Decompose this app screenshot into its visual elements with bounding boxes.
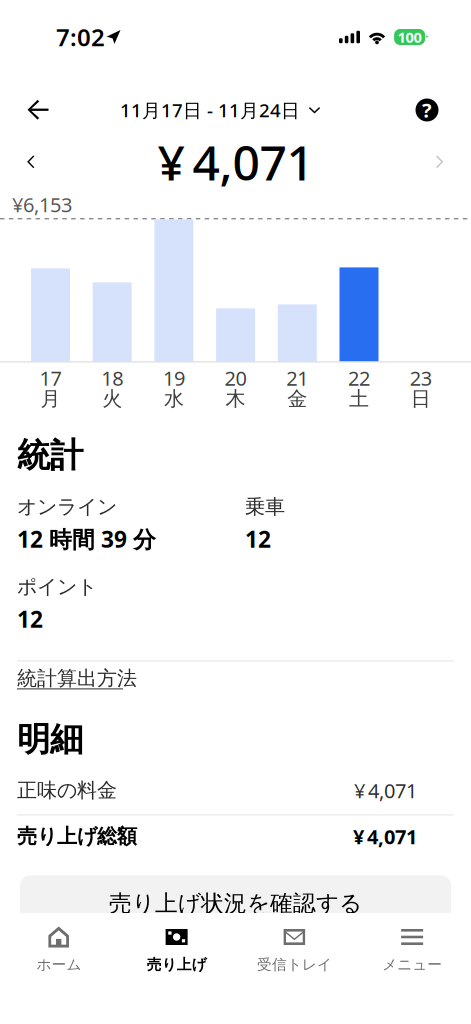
staticText: 月 bbox=[40, 387, 60, 411]
staticText: 17 bbox=[39, 365, 61, 391]
staticText: 20 bbox=[225, 365, 247, 391]
staticText: 火 bbox=[102, 387, 122, 411]
staticText: 21 bbox=[286, 365, 308, 391]
staticText: 受信トレイ bbox=[257, 955, 332, 973]
staticText: オンライン bbox=[17, 495, 117, 519]
staticText: 土 bbox=[349, 387, 369, 411]
staticText: 乗車 bbox=[245, 495, 285, 519]
staticText: 12 bbox=[245, 524, 271, 554]
button[interactable]: 受信トレイ bbox=[235, 926, 353, 972]
staticText: 12 bbox=[17, 604, 43, 634]
staticText: 売り上げ bbox=[147, 955, 207, 973]
staticText: 明細 bbox=[17, 719, 83, 760]
staticText: メニュー bbox=[382, 955, 442, 973]
button[interactable]: Next week bbox=[418, 133, 462, 191]
staticText: 18 bbox=[101, 365, 123, 391]
staticText: 100 bbox=[398, 27, 422, 47]
staticText: ホーム bbox=[36, 955, 81, 973]
staticText: 日 bbox=[411, 387, 431, 411]
staticText: 12 時間 39 分 bbox=[17, 524, 156, 554]
button[interactable]: 11月17日 - 11月24日 bbox=[120, 88, 320, 132]
staticText: ¥ 4,071 bbox=[354, 777, 417, 804]
button[interactable]: Previous week bbox=[9, 133, 53, 191]
staticText: 売り上げ状況を確認する bbox=[109, 889, 362, 917]
staticText: ? bbox=[422, 97, 432, 123]
staticText: ¥ 4,071 bbox=[353, 823, 417, 850]
staticText: ポイント bbox=[17, 575, 97, 599]
button[interactable]: 売り上げ bbox=[118, 926, 236, 972]
staticText: 金 bbox=[287, 387, 307, 411]
staticText: 23 bbox=[410, 365, 432, 391]
staticText: ¥6,153 bbox=[12, 191, 72, 218]
staticText: 正味の料金 bbox=[17, 778, 117, 803]
staticText: 統計算出方法 bbox=[17, 666, 137, 691]
staticText: 木 bbox=[226, 387, 246, 411]
button[interactable]: Help bbox=[405, 88, 449, 132]
button[interactable]: 売り上げ状況を確認する bbox=[20, 875, 451, 931]
button[interactable]: ホーム bbox=[0, 926, 118, 972]
staticText: 19 bbox=[163, 365, 185, 391]
button[interactable]: Back bbox=[16, 88, 60, 132]
button[interactable]: メニュー bbox=[353, 926, 471, 972]
staticText: ¥ 4,071 bbox=[157, 130, 313, 194]
staticText: 水 bbox=[164, 387, 184, 411]
staticText: 7:02 bbox=[56, 21, 105, 53]
staticText: 統計 bbox=[17, 435, 83, 476]
button[interactable]: 統計算出方法 bbox=[17, 661, 137, 689]
staticText: 22 bbox=[348, 365, 370, 391]
staticText: 11月17日 - 11月24日 bbox=[120, 98, 300, 122]
staticText: 売り上げ総額 bbox=[17, 824, 137, 849]
